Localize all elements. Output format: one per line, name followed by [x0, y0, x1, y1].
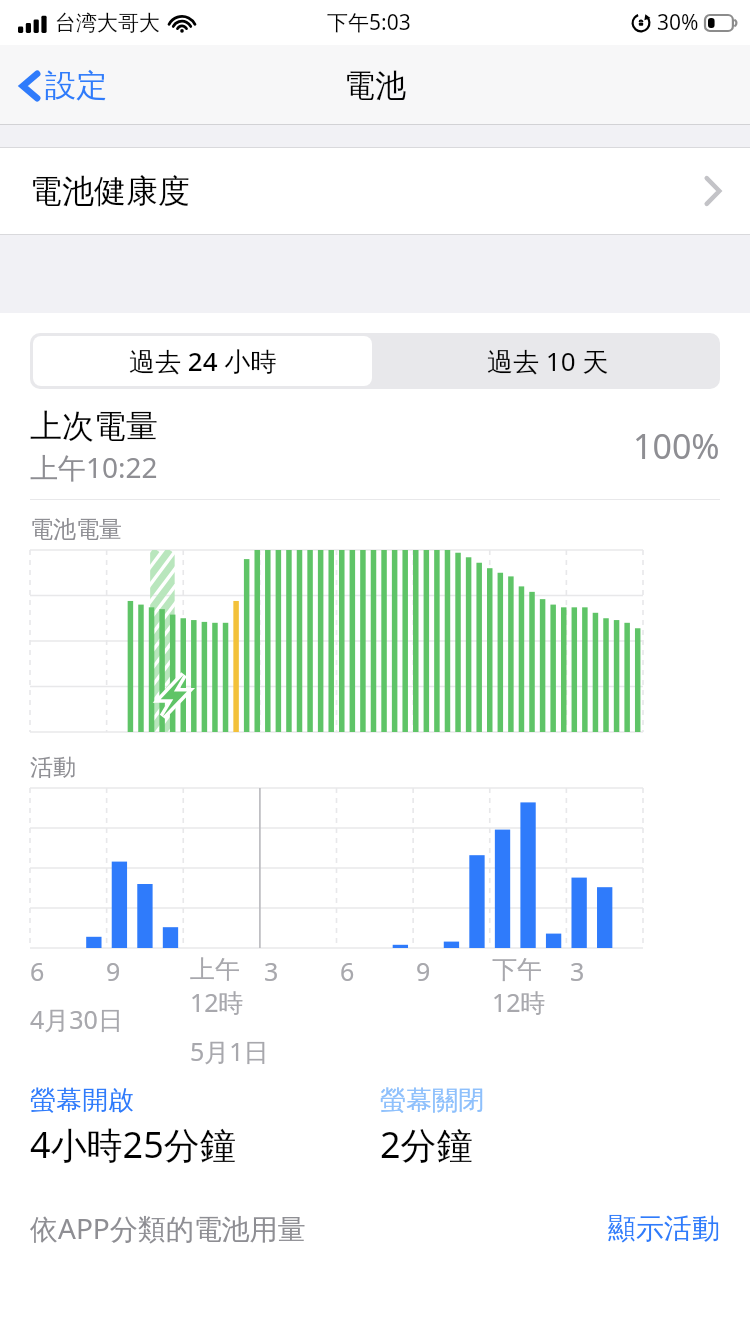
button[interactable]: 過去 10 天 — [375, 333, 720, 389]
button[interactable]: 電池健康度 — [0, 147, 750, 235]
staticText: 4月30日 — [30, 1002, 123, 1036]
staticText: 螢幕開啟 — [30, 1084, 134, 1117]
staticText: 12時 — [492, 985, 546, 1019]
staticText: 9 — [416, 954, 431, 988]
staticText: 台湾大哥大 — [55, 10, 160, 36]
staticText: 螢幕關閉 — [380, 1084, 484, 1117]
staticText: 30% — [657, 8, 699, 37]
staticText: 下午5:03 — [327, 8, 411, 37]
staticText: 電池 — [344, 66, 406, 105]
button[interactable]: 設定 — [14, 60, 111, 111]
staticText: 上次電量 — [30, 406, 158, 446]
staticText: 3 — [570, 954, 585, 988]
staticText: 顯示活動 — [608, 1211, 720, 1246]
staticText: 5月1日 — [190, 1034, 269, 1068]
staticText: 上午 — [190, 954, 240, 985]
staticText: 2分鐘 — [380, 1120, 473, 1169]
staticText: 電池電量 — [30, 515, 122, 544]
staticText: 過去 24 小時 — [129, 343, 277, 379]
staticText: 設定 — [45, 66, 107, 105]
staticText: 100% — [633, 423, 720, 469]
staticText: 過去 10 天 — [487, 343, 609, 379]
staticText: 6 — [30, 954, 45, 988]
button[interactable]: 顯示活動 — [608, 1211, 720, 1246]
staticText: 9 — [106, 954, 121, 988]
staticText: 上午10:22 — [30, 448, 158, 486]
staticText: 12時 — [190, 985, 244, 1019]
staticText: 3 — [264, 954, 279, 988]
staticText: 依APP分類的電池用量 — [30, 1209, 306, 1247]
staticText: 電池健康度 — [30, 171, 190, 211]
staticText: 4小時25分鐘 — [30, 1120, 236, 1169]
staticText: 下午 — [492, 954, 542, 985]
staticText: 活動 — [30, 753, 76, 782]
staticText: 6 — [340, 954, 355, 988]
button[interactable]: 過去 24 小時 — [33, 336, 372, 386]
